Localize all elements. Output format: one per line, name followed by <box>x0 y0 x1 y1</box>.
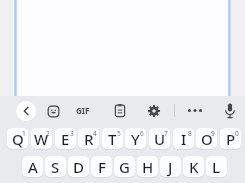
button[interactable] <box>113 103 127 118</box>
staticText: 8 <box>188 129 192 138</box>
staticText: J <box>168 157 173 177</box>
staticText: 1 <box>22 129 26 138</box>
staticText: 4 <box>93 129 97 138</box>
staticText: T <box>108 129 117 149</box>
button[interactable]: O <box>196 128 217 149</box>
staticText: L <box>212 157 221 177</box>
staticText: 5 <box>117 129 121 138</box>
button[interactable] <box>147 104 161 118</box>
button[interactable]: W <box>31 128 52 149</box>
staticText: R <box>84 129 94 149</box>
staticText: S <box>51 157 60 177</box>
staticText: P <box>226 129 236 149</box>
button[interactable]: F <box>91 156 112 177</box>
button[interactable]: U <box>149 128 170 149</box>
button[interactable]: A <box>22 156 43 177</box>
staticText: GIF <box>76 105 90 116</box>
button[interactable]: T <box>102 128 123 149</box>
button[interactable] <box>16 101 36 121</box>
staticText: 7 <box>164 129 168 138</box>
staticText: 9 <box>211 129 215 138</box>
button[interactable]: E <box>55 128 76 149</box>
staticText: F <box>98 157 106 177</box>
staticText: 0 <box>235 129 239 138</box>
button[interactable]: J <box>160 156 181 177</box>
button[interactable]: K <box>183 156 204 177</box>
button[interactable]: G <box>114 156 135 177</box>
button[interactable]: P <box>220 128 241 149</box>
staticText: D <box>73 157 84 177</box>
staticText: I <box>181 129 187 149</box>
staticText: U <box>154 129 166 149</box>
button[interactable]: Q <box>7 128 28 149</box>
staticText: Q <box>12 129 24 149</box>
staticText: 6 <box>140 129 144 138</box>
button[interactable]: S <box>45 156 66 177</box>
button[interactable] <box>186 102 204 119</box>
staticText: E <box>61 129 70 149</box>
staticText: G <box>119 157 130 177</box>
staticText: A <box>28 157 38 177</box>
button[interactable]: H <box>137 156 158 177</box>
staticText: 3 <box>70 129 74 138</box>
button[interactable]: Y <box>125 128 146 149</box>
staticText: Y <box>131 129 140 149</box>
staticText: 2 <box>46 129 50 138</box>
staticText: W <box>34 129 49 149</box>
button[interactable]: GIF <box>72 102 94 119</box>
button[interactable]: R <box>78 128 99 149</box>
button[interactable]: L <box>206 156 227 177</box>
staticText: O <box>201 129 213 149</box>
staticText: H <box>142 157 154 177</box>
staticText: K <box>189 157 199 177</box>
button[interactable] <box>222 102 238 120</box>
button[interactable]: I <box>173 128 194 149</box>
button[interactable]: D <box>68 156 89 177</box>
button[interactable] <box>47 105 60 118</box>
